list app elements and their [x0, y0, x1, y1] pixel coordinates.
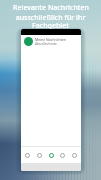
button[interactable]: Tab 3 [57, 150, 68, 161]
button[interactable]: Tab 4 [69, 150, 80, 161]
staticText: ausschließlich für ihr Fachgebiet [1, 13, 100, 30]
button[interactable]: Tab 0 [22, 150, 33, 161]
staticText: Relevante Nachrichten [13, 3, 89, 13]
button[interactable]: Tab 2 [46, 150, 57, 161]
button[interactable]: Tab 1 [34, 150, 45, 161]
staticText: Meine Nachrichten [35, 37, 67, 42]
staticText: Aktuelles heute [35, 42, 57, 46]
